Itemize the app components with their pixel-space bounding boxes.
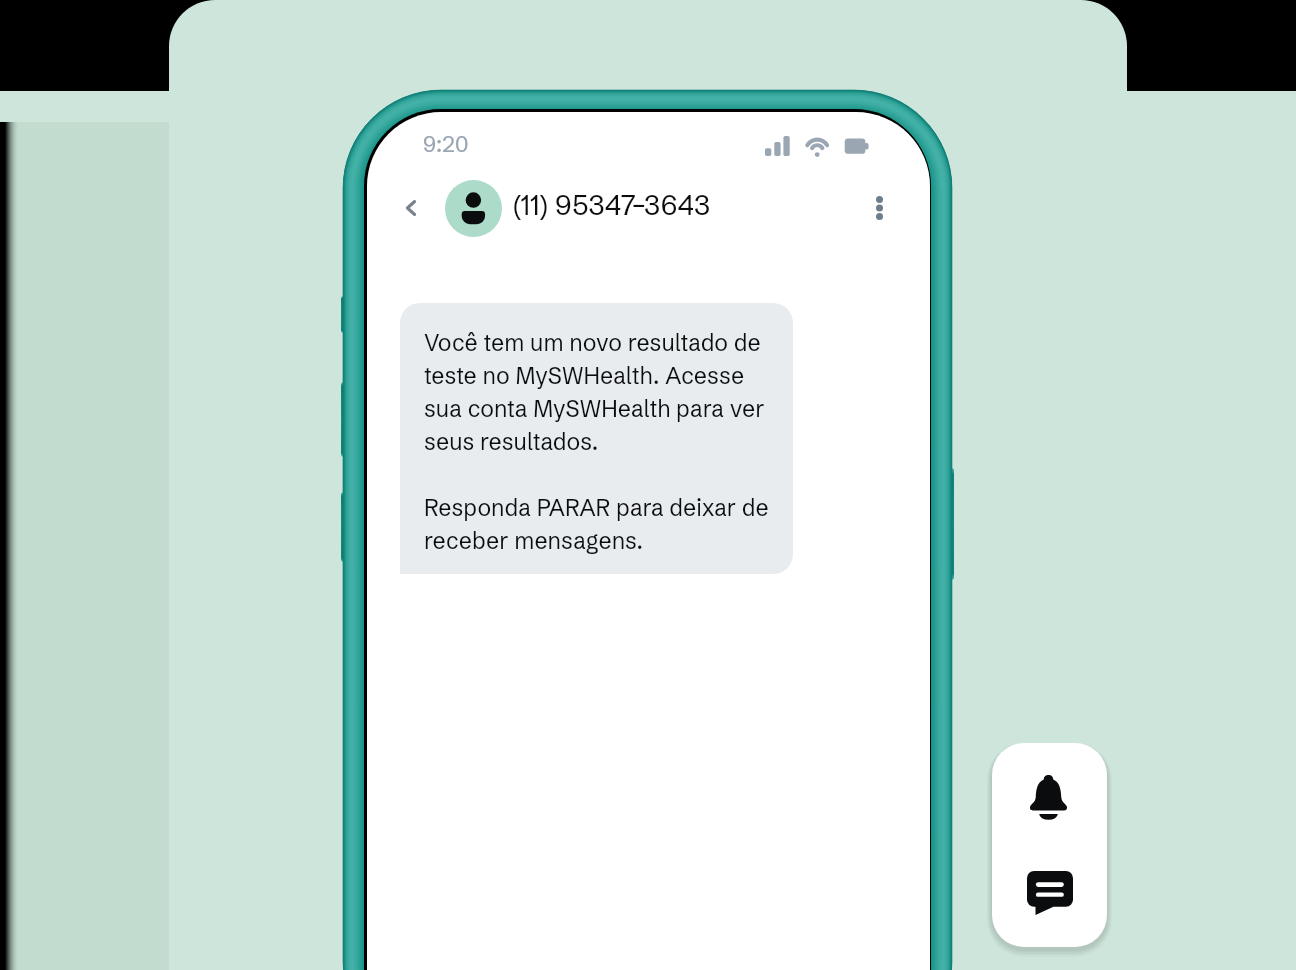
button[interactable]: Você tem um novo resultado de teste no M… [400, 303, 793, 574]
staticText: (11) 95347–3643 [513, 188, 711, 222]
button[interactable]: Messages [996, 847, 1104, 939]
button[interactable]: More options [851, 180, 907, 236]
staticText: Você tem um novo resultado de teste no M… [424, 324, 769, 555]
button[interactable]: Back [383, 180, 439, 236]
button[interactable]: Contact avatar [445, 180, 502, 237]
button[interactable]: Notifications [994, 751, 1102, 843]
staticText: 9:20 [423, 131, 469, 157]
